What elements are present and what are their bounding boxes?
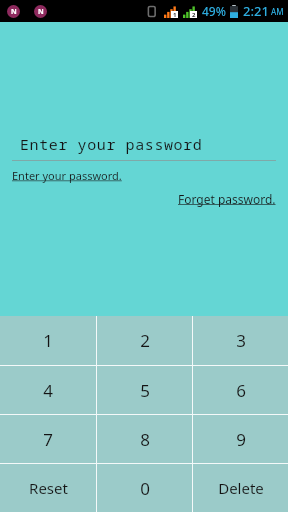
button[interactable]: Delete — [193, 464, 288, 512]
button[interactable]: 8 — [97, 415, 192, 463]
staticText: Delete — [218, 478, 264, 498]
button[interactable]: Enter your password — [12, 134, 276, 161]
staticText: Enter your password — [20, 134, 203, 154]
staticText: 3 — [236, 329, 246, 352]
staticText: 5 — [140, 379, 150, 402]
staticText: N — [11, 7, 17, 17]
staticText: 9 — [236, 428, 246, 451]
button[interactable]: 4 — [0, 366, 96, 414]
staticText: 4 — [43, 379, 53, 402]
button[interactable]: Enter your password. — [12, 168, 122, 183]
staticText: 2:21 — [243, 2, 269, 20]
staticText: 2 — [192, 11, 196, 18]
staticText: Reset — [29, 478, 68, 498]
button[interactable]: 2 — [97, 316, 192, 365]
staticText: 2 — [140, 329, 150, 352]
button[interactable]: 0 — [97, 464, 192, 512]
staticText: 6 — [236, 379, 246, 402]
button[interactable]: 3 — [193, 316, 288, 365]
staticText: 8 — [140, 428, 150, 451]
staticText: 7 — [43, 428, 53, 451]
button[interactable]: Reset — [0, 464, 96, 512]
button[interactable]: Forget password. — [178, 191, 276, 207]
button[interactable]: 5 — [97, 366, 192, 414]
button[interactable]: 9 — [193, 415, 288, 463]
staticText: 0 — [140, 477, 150, 500]
staticText: 1 — [173, 11, 177, 18]
staticText: N — [38, 7, 44, 17]
button[interactable]: 1 — [0, 316, 96, 365]
button[interactable]: 6 — [193, 366, 288, 414]
staticText: 1 — [43, 329, 53, 352]
staticText: AM — [271, 6, 284, 17]
button[interactable]: 7 — [0, 415, 96, 463]
staticText: 49% — [202, 3, 226, 19]
